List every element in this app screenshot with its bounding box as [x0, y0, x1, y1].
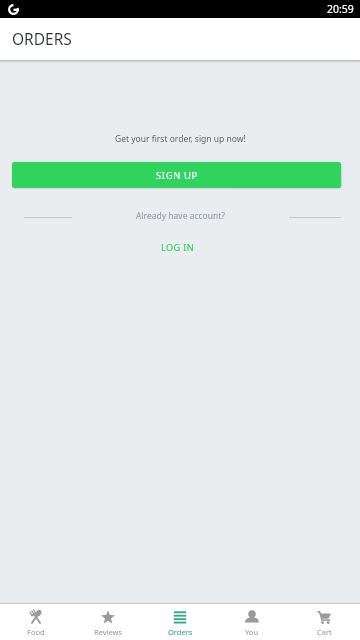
staticText: SIGN UP	[156, 169, 198, 182]
staticText: Orders	[168, 627, 193, 637]
staticText: You	[245, 627, 259, 637]
button[interactable]: Reviews	[72, 604, 144, 640]
staticText: Get your first order, sign up now!	[115, 133, 246, 145]
button[interactable]: Orders	[144, 604, 216, 640]
button[interactable]: SIGN UP	[12, 162, 341, 188]
button[interactable]: You	[216, 604, 288, 640]
staticText: Food	[27, 627, 45, 637]
staticText: 20:59	[327, 2, 354, 16]
button[interactable]: LOG IN	[149, 238, 207, 257]
button[interactable]: Food	[0, 604, 72, 640]
staticText: LOG IN	[161, 241, 195, 254]
staticText: Already have account?	[136, 210, 225, 222]
button[interactable]: Cart	[288, 604, 360, 640]
staticText: Cart	[317, 627, 332, 637]
other: Google notification	[8, 4, 19, 15]
staticText: Reviews	[94, 627, 123, 637]
staticText: ORDERS	[12, 28, 72, 49]
